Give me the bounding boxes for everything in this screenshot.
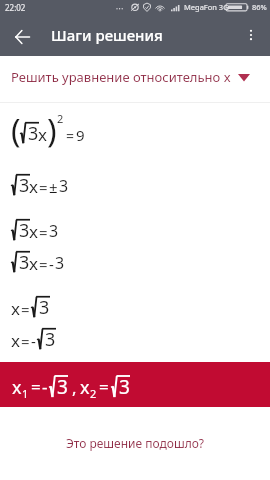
staticText: 3 [19,173,30,198]
staticText: x [29,220,38,243]
staticText: 3 [39,295,50,320]
staticText: = [39,222,48,242]
staticText: x [29,175,38,198]
staticText: ) [47,109,57,153]
staticText: x [11,329,20,352]
staticText: x [29,252,38,275]
staticText: , [72,376,77,399]
staticText: = [21,331,30,351]
staticText: 22:02 [5,2,26,13]
staticText: = [31,375,41,398]
staticText: x [38,123,47,146]
staticText: = [66,126,75,145]
staticText: Решить уравнение относительно x [11,68,231,86]
staticText: 3 [55,252,65,274]
staticText: = [21,299,30,319]
button[interactable]: More options [233,17,269,53]
staticText: - [49,254,54,274]
staticText: 3 [19,250,30,275]
staticText: ( [11,109,21,153]
staticText: x [80,375,90,400]
staticText: = [39,177,48,197]
button[interactable]: Это решение подошло? [0,435,270,451]
button[interactable]: Back [0,14,44,56]
staticText: 2 [90,386,97,401]
staticText: x [11,297,20,320]
staticText: 9 [76,125,85,145]
staticText: - [31,331,36,351]
button[interactable]: Решить уравнение относительно x [0,56,270,102]
staticText: MegaFon 3G [184,2,229,12]
staticText: 1 [22,386,29,401]
staticText: 3 [119,374,130,400]
staticText: 3 [19,218,30,243]
staticText: 2 [57,111,64,126]
staticText: 3 [49,220,59,242]
staticText: x [12,375,22,400]
staticText: = [99,375,109,398]
button[interactable]: x [0,362,270,407]
staticText: - [42,375,48,398]
staticText: Шаги решения [51,25,163,45]
staticText: ± [49,177,58,197]
staticText: 86% [252,2,267,12]
staticText: = [39,254,48,274]
staticText: 3 [45,327,56,352]
staticText: 3 [57,374,68,400]
staticText: 3 [59,175,69,197]
staticText: 3 [28,121,39,146]
